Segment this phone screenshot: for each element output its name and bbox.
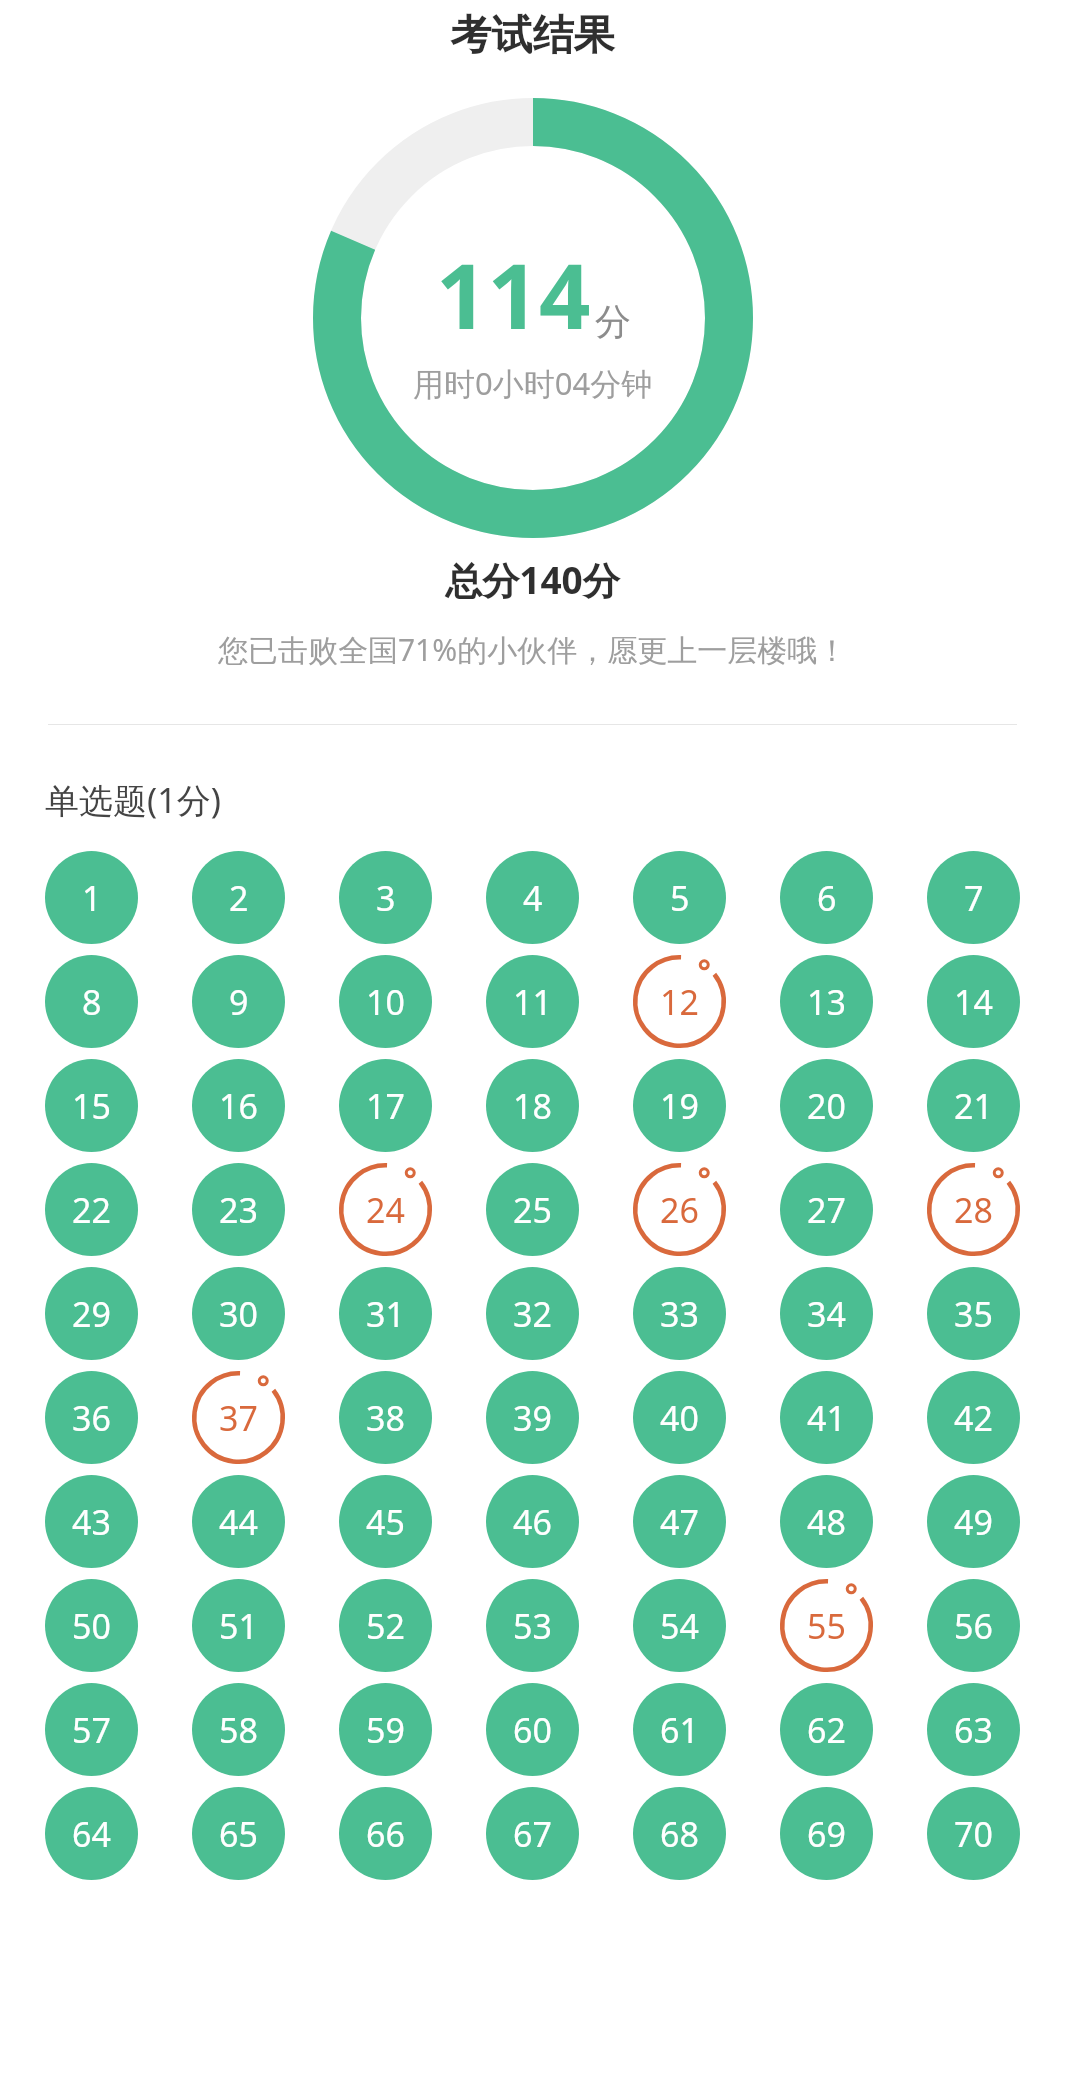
- button[interactable]: 13: [780, 955, 873, 1048]
- button[interactable]: 20: [780, 1059, 873, 1152]
- button[interactable]: 56: [927, 1579, 1020, 1672]
- staticText: 53: [513, 1603, 552, 1649]
- button[interactable]: 48: [780, 1475, 873, 1568]
- button[interactable]: 21: [927, 1059, 1020, 1152]
- button[interactable]: 46: [486, 1475, 579, 1568]
- button[interactable]: 15: [45, 1059, 138, 1152]
- button[interactable]: 5: [633, 851, 726, 944]
- staticText: 7: [964, 875, 984, 921]
- button[interactable]: 28: [927, 1163, 1020, 1256]
- button[interactable]: 59: [339, 1683, 432, 1776]
- button[interactable]: 19: [633, 1059, 726, 1152]
- button[interactable]: 26: [633, 1163, 726, 1256]
- button[interactable]: 1: [45, 851, 138, 944]
- staticText: 70: [954, 1811, 993, 1857]
- button[interactable]: 68: [633, 1787, 726, 1880]
- button[interactable]: 50: [45, 1579, 138, 1672]
- staticText: 38: [366, 1395, 405, 1441]
- button[interactable]: 32: [486, 1267, 579, 1360]
- staticText: 56: [954, 1603, 993, 1649]
- button[interactable]: 12: [633, 955, 726, 1048]
- staticText: 40: [660, 1395, 699, 1441]
- button[interactable]: 65: [192, 1787, 285, 1880]
- button[interactable]: 67: [486, 1787, 579, 1880]
- staticText: 52: [366, 1603, 405, 1649]
- button[interactable]: 62: [780, 1683, 873, 1776]
- button[interactable]: 64: [45, 1787, 138, 1880]
- button[interactable]: 27: [780, 1163, 873, 1256]
- button[interactable]: 7: [927, 851, 1020, 944]
- staticText: 51: [219, 1603, 258, 1649]
- button[interactable]: 60: [486, 1683, 579, 1776]
- button[interactable]: 43: [45, 1475, 138, 1568]
- button[interactable]: 14: [927, 955, 1020, 1048]
- button[interactable]: 36: [45, 1371, 138, 1464]
- button[interactable]: 9: [192, 955, 285, 1048]
- button[interactable]: 47: [633, 1475, 726, 1568]
- staticText: 20: [807, 1083, 846, 1129]
- button[interactable]: 25: [486, 1163, 579, 1256]
- button[interactable]: 4: [486, 851, 579, 944]
- button[interactable]: 23: [192, 1163, 285, 1256]
- button[interactable]: 18: [486, 1059, 579, 1152]
- button[interactable]: 8: [45, 955, 138, 1048]
- button[interactable]: 35: [927, 1267, 1020, 1360]
- staticText: 32: [513, 1291, 552, 1337]
- button[interactable]: 52: [339, 1579, 432, 1672]
- button[interactable]: 42: [927, 1371, 1020, 1464]
- button[interactable]: 39: [486, 1371, 579, 1464]
- button[interactable]: 69: [780, 1787, 873, 1880]
- button[interactable]: 55: [780, 1579, 873, 1672]
- button[interactable]: 24: [339, 1163, 432, 1256]
- button[interactable]: 16: [192, 1059, 285, 1152]
- staticText: 22: [72, 1187, 111, 1233]
- button[interactable]: 31: [339, 1267, 432, 1360]
- button[interactable]: 57: [45, 1683, 138, 1776]
- button[interactable]: 34: [780, 1267, 873, 1360]
- staticText: 43: [72, 1499, 111, 1545]
- staticText: 12: [660, 979, 699, 1025]
- button[interactable]: 38: [339, 1371, 432, 1464]
- button[interactable]: 44: [192, 1475, 285, 1568]
- button[interactable]: 3: [339, 851, 432, 944]
- staticText: 67: [513, 1811, 552, 1857]
- staticText: 61: [660, 1707, 699, 1753]
- button[interactable]: 2: [192, 851, 285, 944]
- button[interactable]: 63: [927, 1683, 1020, 1776]
- staticText: 29: [72, 1291, 111, 1337]
- button[interactable]: 66: [339, 1787, 432, 1880]
- button[interactable]: 11: [486, 955, 579, 1048]
- staticText: 5: [670, 875, 690, 921]
- button[interactable]: 45: [339, 1475, 432, 1568]
- staticText: 单选题(1分): [45, 777, 221, 823]
- staticText: 41: [807, 1395, 846, 1441]
- staticText: 28: [954, 1187, 993, 1233]
- staticText: 65: [219, 1811, 258, 1857]
- staticText: 57: [72, 1707, 111, 1753]
- staticText: 47: [660, 1499, 699, 1545]
- button[interactable]: 17: [339, 1059, 432, 1152]
- button[interactable]: 6: [780, 851, 873, 944]
- button[interactable]: 33: [633, 1267, 726, 1360]
- button[interactable]: 51: [192, 1579, 285, 1672]
- button[interactable]: 49: [927, 1475, 1020, 1568]
- staticText: 24: [366, 1187, 405, 1233]
- button[interactable]: 30: [192, 1267, 285, 1360]
- button[interactable]: 41: [780, 1371, 873, 1464]
- button[interactable]: 70: [927, 1787, 1020, 1880]
- button[interactable]: 10: [339, 955, 432, 1048]
- staticText: 分: [595, 299, 631, 344]
- button[interactable]: 37: [192, 1371, 285, 1464]
- staticText: 总分140分: [0, 554, 1065, 605]
- staticText: 64: [72, 1811, 111, 1857]
- staticText: 31: [366, 1291, 405, 1337]
- button[interactable]: 29: [45, 1267, 138, 1360]
- button[interactable]: 22: [45, 1163, 138, 1256]
- button[interactable]: 40: [633, 1371, 726, 1464]
- button[interactable]: 61: [633, 1683, 726, 1776]
- button[interactable]: 54: [633, 1579, 726, 1672]
- button[interactable]: 58: [192, 1683, 285, 1776]
- staticText: 55: [807, 1603, 846, 1649]
- button[interactable]: 53: [486, 1579, 579, 1672]
- staticText: 35: [954, 1291, 993, 1337]
